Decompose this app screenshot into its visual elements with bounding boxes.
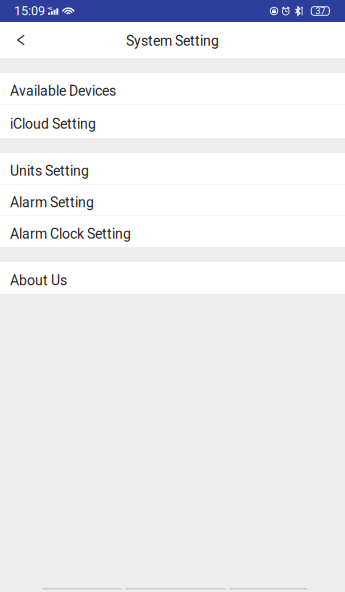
staticText: 15:09 (14, 4, 45, 18)
staticText: iCloud Setting (10, 116, 96, 132)
button[interactable]: iCloud Setting (0, 105, 345, 138)
staticText: About Us (10, 272, 67, 289)
staticText: Alarm Setting (10, 194, 94, 211)
staticText: Alarm Clock Setting (10, 226, 131, 242)
staticText: Units Setting (10, 163, 89, 179)
staticText: Available Devices (10, 83, 116, 99)
button[interactable]: Back (3, 22, 39, 58)
button[interactable]: About Us (0, 262, 345, 294)
button[interactable]: Units Setting (0, 153, 345, 185)
button[interactable]: Alarm Setting (0, 185, 345, 216)
button[interactable]: Available Devices (0, 73, 345, 105)
staticText: 37 (315, 5, 325, 16)
button[interactable]: Alarm Clock Setting (0, 216, 345, 247)
staticText: System Setting (126, 33, 219, 49)
